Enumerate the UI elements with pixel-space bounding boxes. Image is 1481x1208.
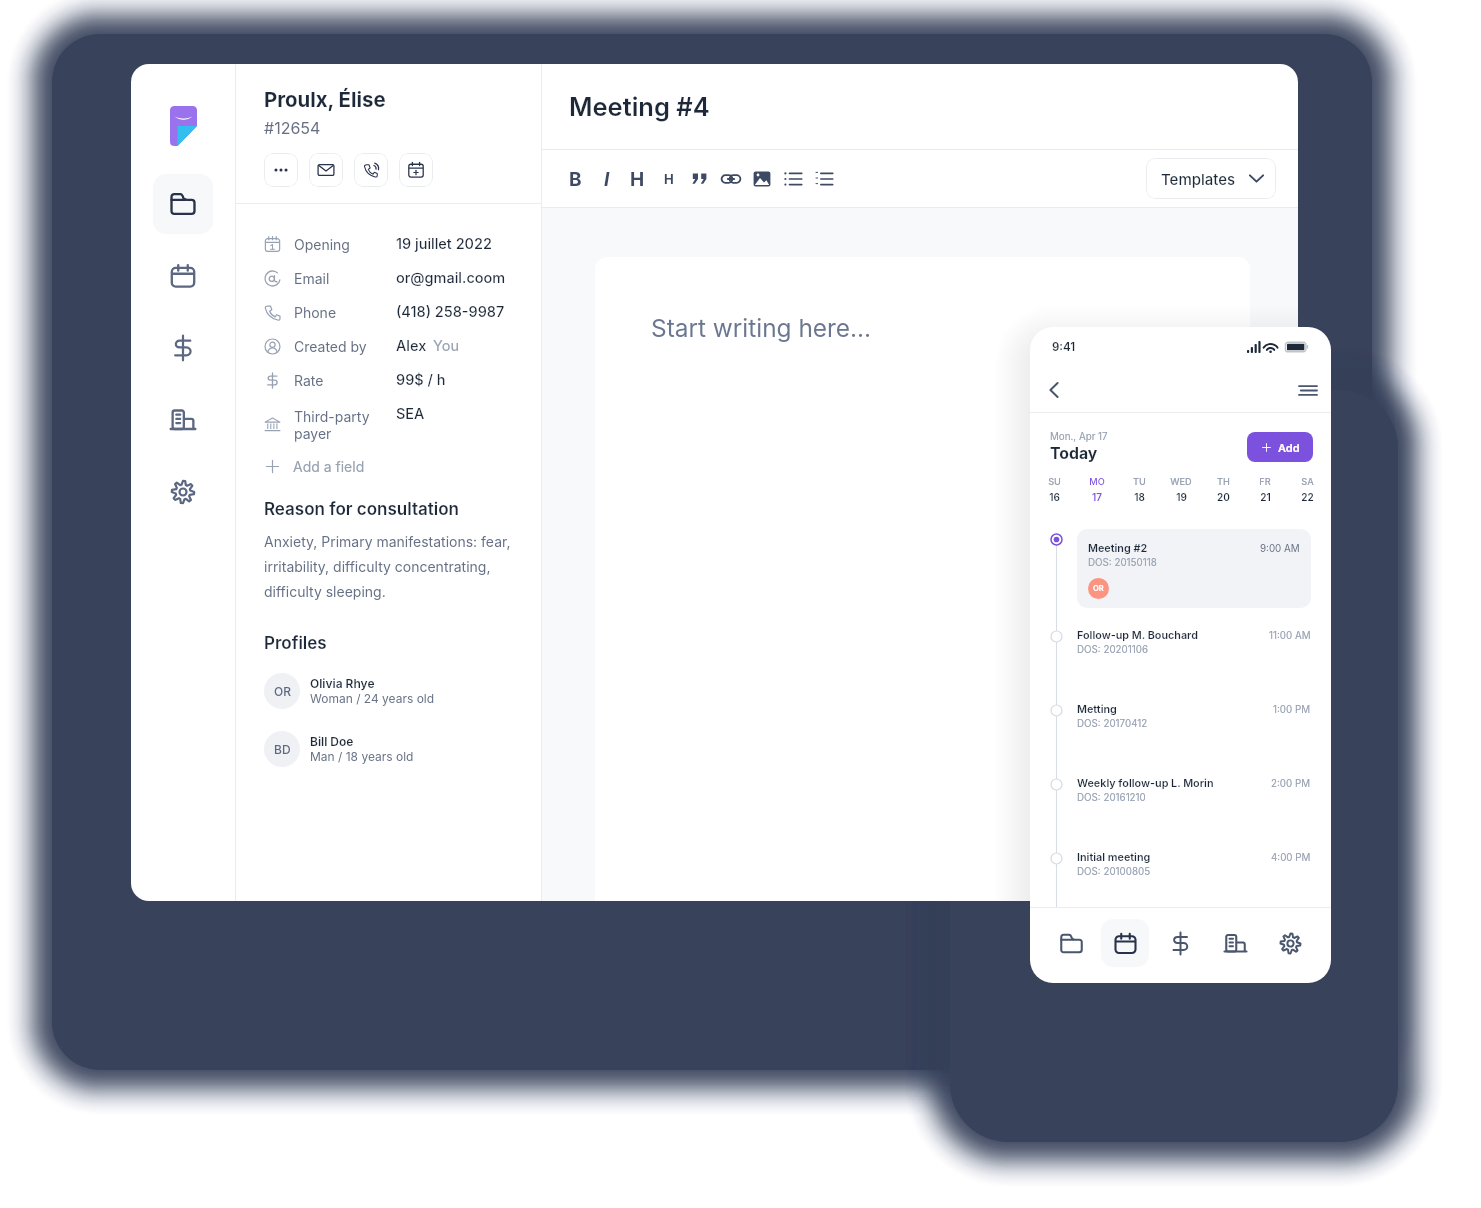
staticText: 20 xyxy=(1217,491,1230,503)
button[interactable]: Settings xyxy=(1266,919,1314,967)
staticText: WED xyxy=(1170,476,1192,487)
button[interactable]: Quote xyxy=(684,160,715,198)
staticText: Created by xyxy=(294,338,396,355)
button[interactable]: TU xyxy=(1118,476,1160,503)
staticText: Follow-up M. Bouchard xyxy=(1077,629,1198,642)
staticText: Opening xyxy=(294,236,396,253)
button[interactable]: Meeting #2 xyxy=(1077,529,1311,608)
staticText: DOS: 20170412 xyxy=(1077,718,1148,730)
button[interactable]: Italic xyxy=(591,160,622,198)
button[interactable]: Billing xyxy=(153,318,213,378)
staticText: (418) 258-9987 xyxy=(396,303,505,321)
button[interactable]: Initial meeting xyxy=(1077,848,1311,887)
staticText: DOS: 20100805 xyxy=(1077,866,1151,878)
staticText: 19 juillet 2022 xyxy=(396,235,492,253)
button[interactable]: TH xyxy=(1202,476,1244,503)
staticText: TU xyxy=(1133,476,1146,487)
staticText: Phone xyxy=(294,304,396,321)
button[interactable]: MO xyxy=(1076,476,1118,503)
staticText: H xyxy=(630,168,645,191)
button[interactable]: Settings xyxy=(153,462,213,522)
staticText: 4:00 PM xyxy=(1271,852,1311,864)
button[interactable]: WED xyxy=(1160,476,1202,503)
staticText: SEA xyxy=(396,405,425,423)
staticText: Weekly follow-up L. Morin xyxy=(1077,777,1214,790)
staticText: DOS: 20201106 xyxy=(1077,644,1148,656)
button[interactable]: Heading 1 xyxy=(622,160,653,198)
staticText: DOS: 20161210 xyxy=(1077,792,1146,804)
staticText: You xyxy=(433,337,459,355)
staticText: H xyxy=(664,171,674,187)
button[interactable]: Email xyxy=(309,153,343,187)
staticText: OR xyxy=(274,684,291,699)
button[interactable]: OR xyxy=(264,666,513,716)
button[interactable]: Billing xyxy=(1156,919,1204,967)
staticText: Anxiety, Primary manifestations: fear, i… xyxy=(264,533,513,601)
staticText: Mon., Apr 17 xyxy=(1050,431,1108,443)
button[interactable]: Menu xyxy=(1294,376,1322,404)
staticText: Meeting #2 xyxy=(1088,542,1148,555)
button[interactable]: Files xyxy=(153,174,213,234)
staticText: SU xyxy=(1048,476,1061,487)
button[interactable]: Calendar xyxy=(153,246,213,306)
button[interactable]: Bulleted list xyxy=(777,160,808,198)
staticText: BD xyxy=(274,742,291,757)
button[interactable]: Back xyxy=(1040,376,1068,404)
staticText: #12654 xyxy=(264,118,321,137)
staticText: OR xyxy=(1093,584,1104,593)
staticText: 9:00 AM xyxy=(1260,543,1300,555)
button[interactable]: Image xyxy=(746,160,777,198)
button[interactable]: Link xyxy=(715,160,746,198)
staticText: Third-party xyxy=(294,408,370,425)
button[interactable]: SU xyxy=(1033,476,1076,503)
button[interactable]: Templates xyxy=(1146,158,1276,199)
staticText: Initial meeting xyxy=(1077,851,1151,864)
staticText: payer xyxy=(294,425,332,442)
staticText: Proulx, Élise xyxy=(264,87,386,112)
staticText: 21 xyxy=(1260,491,1271,503)
button[interactable]: SA xyxy=(1286,476,1328,503)
button[interactable]: FR xyxy=(1244,476,1286,503)
staticText: Man / 18 years old xyxy=(310,749,414,764)
button[interactable]: More xyxy=(264,153,298,187)
button[interactable]: Metting xyxy=(1077,700,1311,739)
staticText: Start writing here... xyxy=(651,313,872,343)
staticText: SA xyxy=(1301,476,1314,487)
staticText: I xyxy=(604,168,610,191)
staticText: TH xyxy=(1217,476,1230,487)
button[interactable]: Organisation xyxy=(153,390,213,450)
staticText: Woman / 24 years old xyxy=(310,691,435,706)
button[interactable]: Weekly follow-up L. Morin xyxy=(1077,774,1311,813)
button[interactable]: Bold xyxy=(560,160,591,198)
staticText: MO xyxy=(1089,476,1105,487)
button[interactable]: Calendar xyxy=(1101,919,1149,967)
staticText: or@gmail.coom xyxy=(396,269,506,287)
staticText: Olivia Rhye xyxy=(310,676,375,691)
button[interactable]: Numbered list xyxy=(808,160,839,198)
staticText: Metting xyxy=(1077,703,1117,716)
button[interactable]: Add xyxy=(1247,432,1313,462)
staticText: 11:00 AM xyxy=(1269,630,1311,642)
staticText: Profiles xyxy=(264,633,327,654)
staticText: 18 xyxy=(1134,491,1145,503)
staticText: DOS: 20150118 xyxy=(1088,557,1157,569)
button[interactable]: Files xyxy=(1047,919,1095,967)
staticText: 19 xyxy=(1176,491,1187,503)
staticText: Email xyxy=(294,270,396,287)
staticText: Meeting #4 xyxy=(569,91,710,122)
staticText: Add a field xyxy=(293,458,365,475)
button[interactable]: BD xyxy=(264,724,513,774)
button[interactable]: Follow-up M. Bouchard xyxy=(1077,626,1311,665)
staticText: Templates xyxy=(1161,170,1236,188)
button[interactable]: Organisation xyxy=(1211,919,1259,967)
button[interactable]: Call xyxy=(354,153,388,187)
staticText: 9:41 xyxy=(1052,340,1076,354)
staticText: B xyxy=(569,168,582,191)
staticText: 17 xyxy=(1092,491,1102,503)
staticText: Add xyxy=(1278,441,1300,454)
button[interactable]: Heading 2 xyxy=(653,160,684,198)
staticText: 2:00 PM xyxy=(1271,778,1311,790)
staticText: 1:00 PM xyxy=(1273,704,1311,716)
button[interactable]: Schedule xyxy=(399,153,433,187)
staticText: Alex xyxy=(396,337,427,355)
